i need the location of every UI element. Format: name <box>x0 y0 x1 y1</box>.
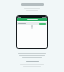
button[interactable] <box>17 18 47 21</box>
button[interactable]: Action <box>39 23 46 25</box>
button[interactable]: Action <box>17 22 47 25</box>
